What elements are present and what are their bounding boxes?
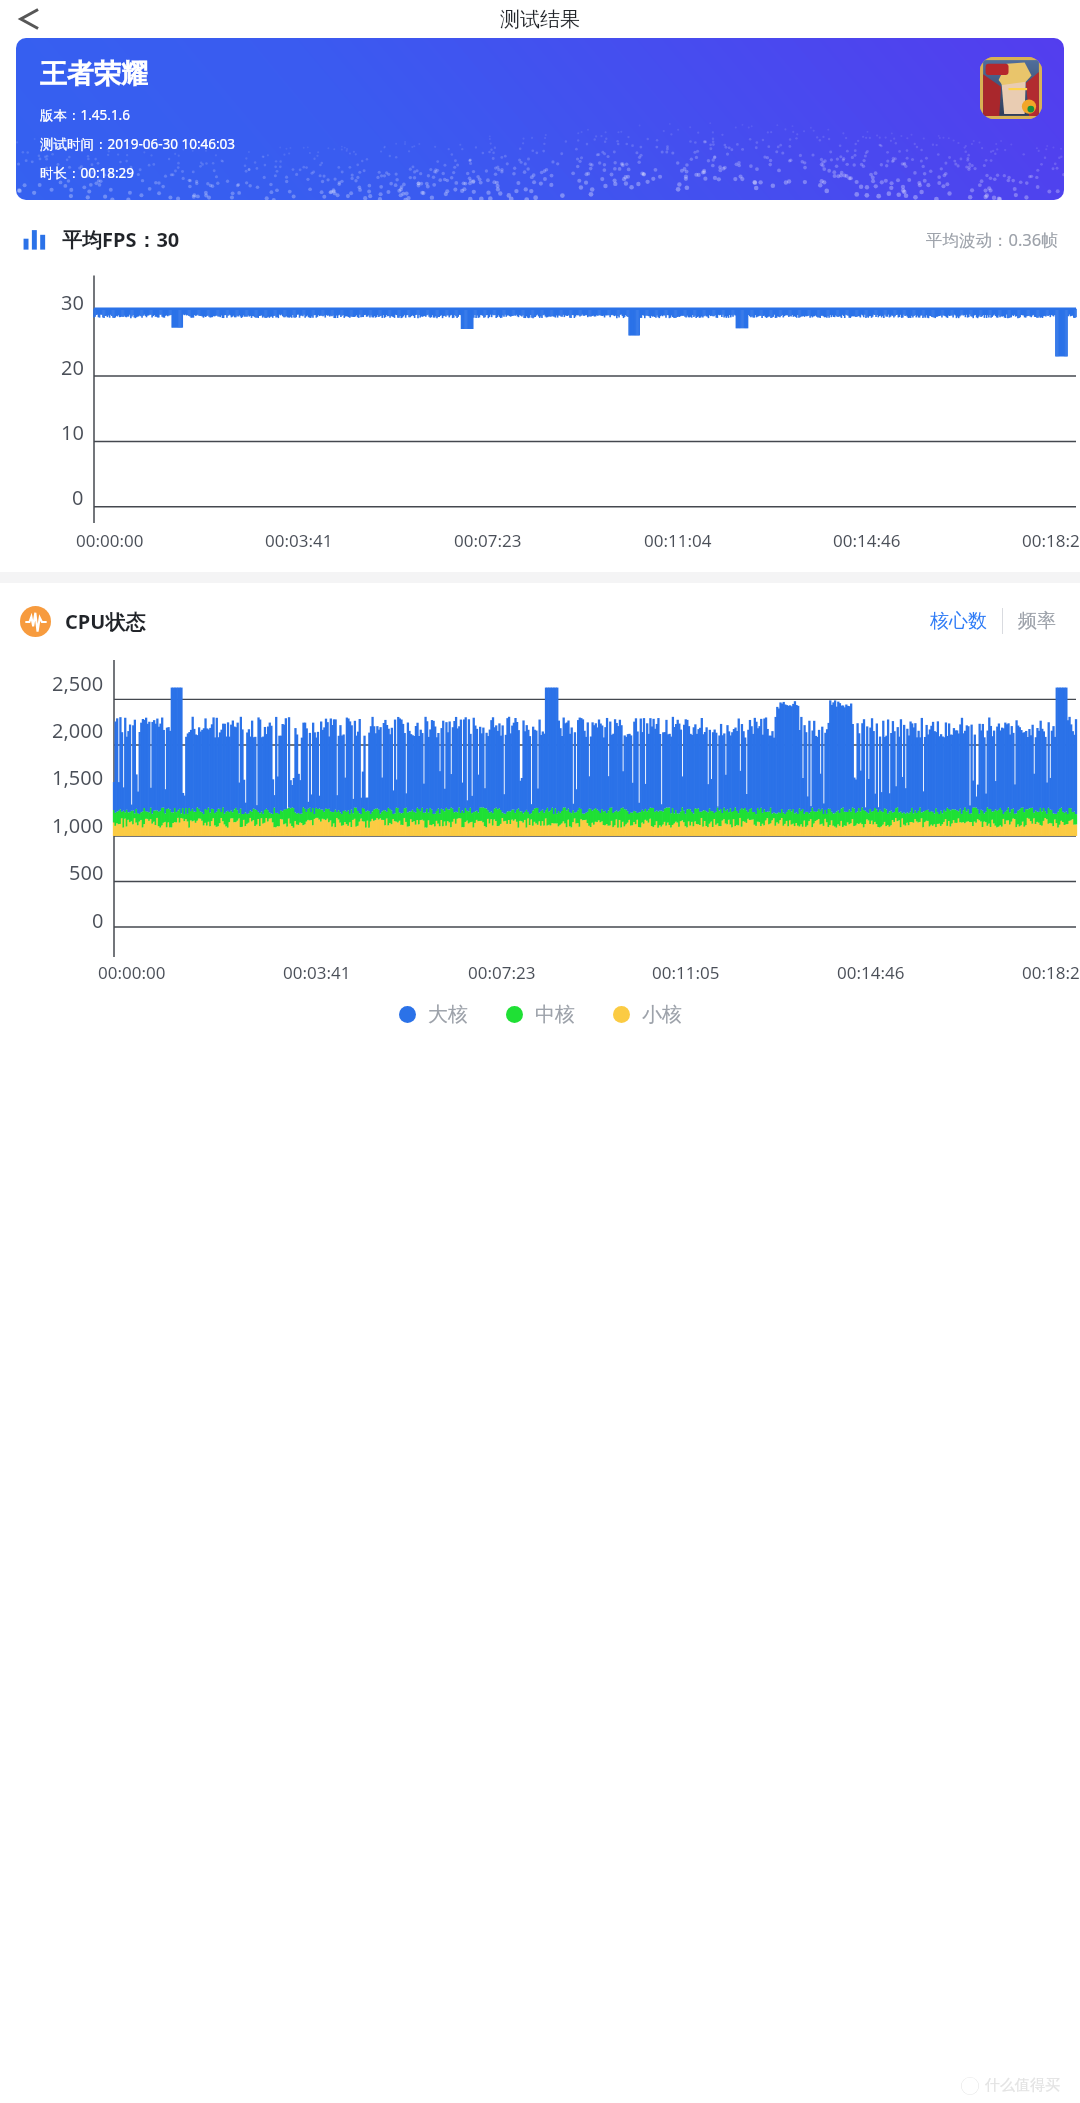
staticText: 00:00:00 — [98, 961, 166, 984]
staticText: 1,000 — [52, 812, 104, 839]
button[interactable]: 小核 — [609, 998, 686, 1031]
button[interactable]: 大核 — [395, 998, 472, 1031]
staticText: 00:18:2 — [1022, 961, 1080, 984]
staticText: 频率 — [1018, 609, 1056, 633]
staticText: 0 — [92, 907, 104, 934]
staticText: 2,000 — [52, 717, 104, 744]
staticText: 00:18:2 — [1022, 529, 1080, 552]
staticText: 30 — [61, 289, 84, 316]
button[interactable]: Back — [4, 0, 46, 38]
staticText: 00:03:41 — [265, 529, 333, 552]
staticText: 时长：00:18:29 — [40, 164, 135, 182]
staticText: 00:14:46 — [833, 529, 901, 552]
staticText: 500 — [69, 859, 104, 886]
staticText: 小核 — [642, 1002, 682, 1027]
staticText: 1,500 — [52, 764, 104, 791]
staticText: 00:00:00 — [76, 529, 144, 552]
staticText: 00:07:23 — [468, 961, 536, 984]
button[interactable]: 中核 — [502, 998, 579, 1031]
staticText: 00:14:46 — [837, 961, 905, 984]
staticText: 版本：1.45.1.6 — [40, 106, 130, 124]
staticText: 20 — [61, 354, 84, 381]
staticText: 2,500 — [52, 670, 104, 697]
staticText: 核心数 — [930, 609, 987, 633]
staticText: 10 — [61, 419, 84, 446]
staticText: CPU状态 — [65, 608, 146, 635]
staticText: 测试结果 — [500, 7, 580, 32]
staticText: 平均FPS：30 — [62, 226, 180, 253]
button[interactable]: 王者荣耀 — [16, 38, 1064, 200]
button[interactable]: 频率 — [1014, 605, 1060, 637]
staticText: 测试时间：2019-06-30 10:46:03 — [40, 135, 236, 153]
staticText: 00:03:41 — [283, 961, 351, 984]
staticText: 大核 — [428, 1002, 468, 1027]
staticText: 王者荣耀 — [40, 57, 148, 91]
staticText: 平均波动：0.36帧 — [926, 228, 1058, 251]
staticText: 00:11:05 — [652, 961, 720, 984]
staticText: 中核 — [535, 1002, 575, 1027]
staticText: 0 — [72, 484, 84, 511]
staticText: 什么值得买 — [985, 2076, 1060, 2095]
staticText: 00:11:04 — [644, 529, 712, 552]
staticText: 00:07:23 — [454, 529, 522, 552]
button[interactable]: 核心数 — [926, 605, 991, 637]
